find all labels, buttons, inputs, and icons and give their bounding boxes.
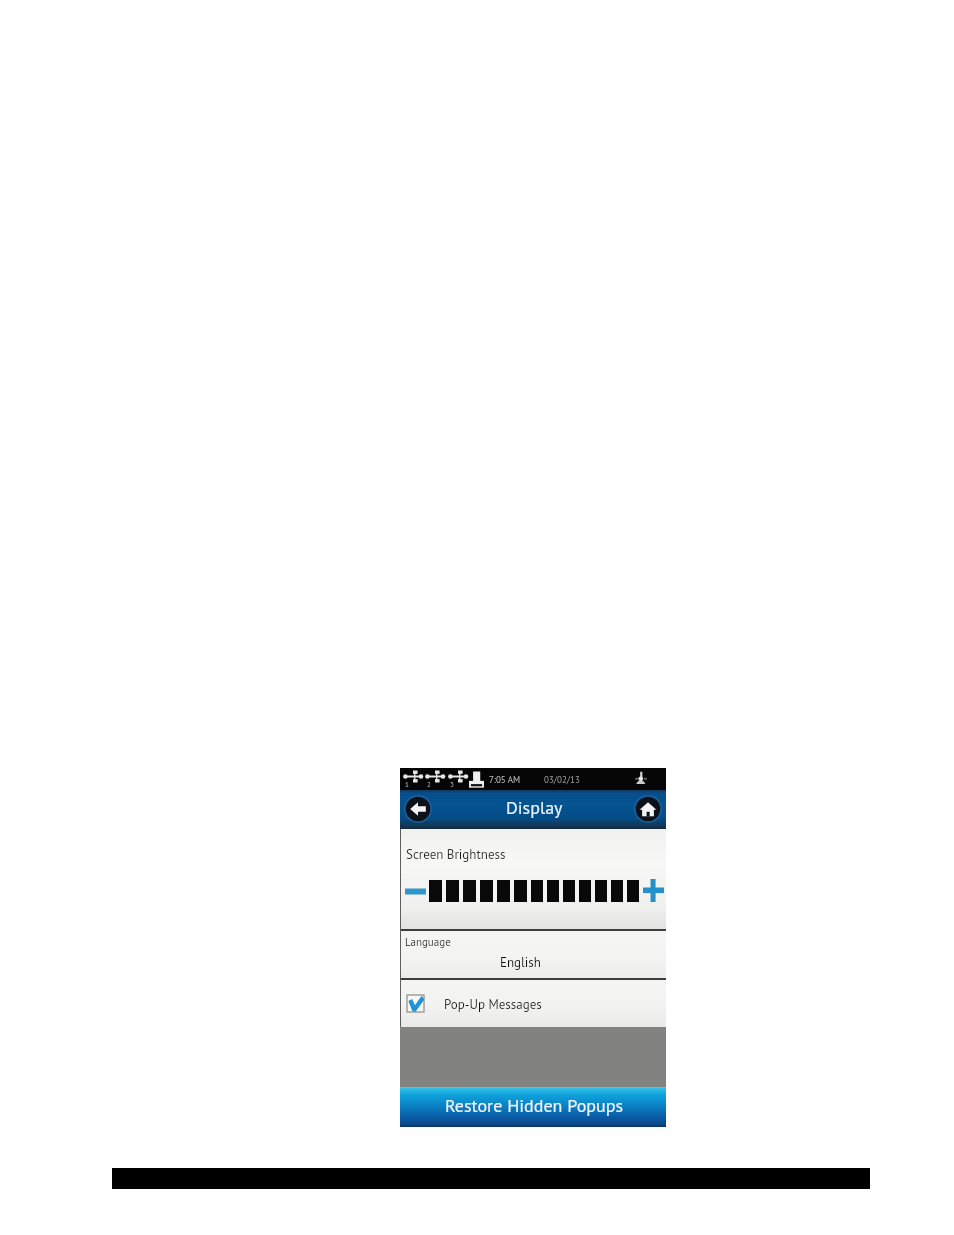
staticText: 7:05 AM [489, 774, 521, 786]
staticText: 3 [450, 780, 454, 789]
button[interactable]: Pop-Up Messages [400, 980, 666, 1027]
button[interactable]: Back [404, 795, 432, 823]
button[interactable]: Restore Hidden Popups [400, 1087, 666, 1127]
staticText: Display [506, 796, 563, 819]
staticText: Language [405, 935, 451, 949]
staticText: 2 [427, 780, 431, 789]
staticText: 1 [405, 780, 409, 789]
button[interactable]: Home [634, 795, 662, 823]
staticText: Restore Hidden Popups [445, 1094, 624, 1117]
button[interactable]: Screen Brightness [400, 829, 666, 929]
staticText: English [500, 954, 541, 971]
staticText: Pop-Up Messages [444, 996, 542, 1013]
staticText: 03/02/13 [544, 774, 580, 786]
button[interactable]: Language [400, 931, 666, 978]
staticText: Screen Brightness [406, 846, 506, 863]
